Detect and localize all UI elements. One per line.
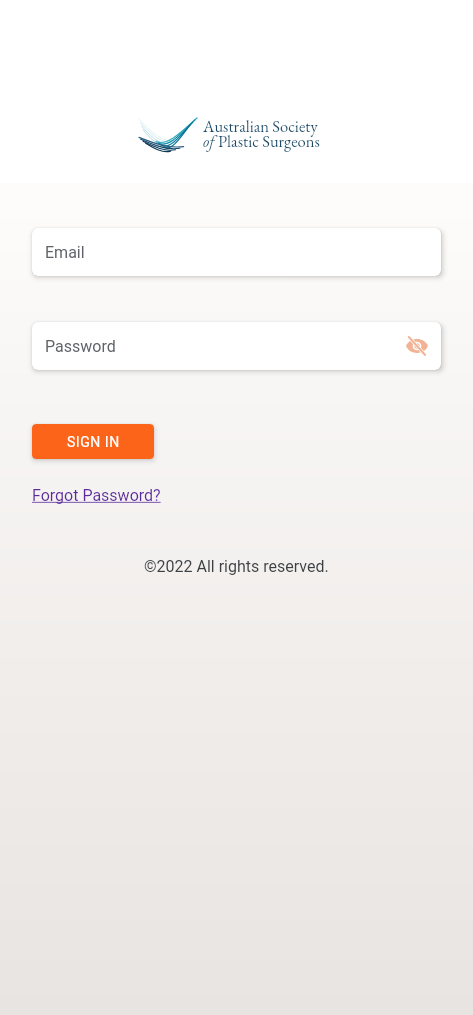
button[interactable]: Email — [32, 228, 441, 276]
staticText: Password — [45, 337, 116, 356]
button[interactable]: Forgot Password? — [32, 486, 161, 505]
staticText: Forgot Password? — [32, 486, 161, 505]
staticText: of — [203, 130, 218, 152]
staticText: Australian Society — [203, 115, 318, 137]
staticText: SIGN IN — [67, 434, 120, 450]
button[interactable]: Password — [32, 322, 441, 370]
staticText: Plastic Surgeons — [218, 130, 320, 152]
staticText: Email — [45, 243, 85, 262]
button[interactable]: Show password — [403, 332, 431, 360]
button[interactable]: SIGN IN — [32, 424, 154, 459]
staticText: ©2022 All rights reserved. — [144, 557, 329, 576]
